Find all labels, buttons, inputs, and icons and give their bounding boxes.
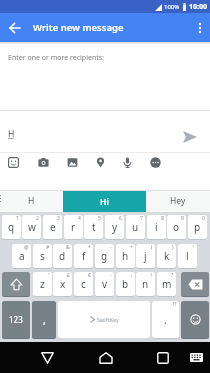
button[interactable] xyxy=(181,301,209,338)
staticText: z xyxy=(40,277,45,291)
staticText: Enter one or more recipients: xyxy=(8,53,104,63)
button[interactable]: x xyxy=(53,272,72,296)
button[interactable]: y xyxy=(105,215,124,239)
button[interactable]: w xyxy=(22,215,41,239)
button[interactable]: b xyxy=(116,272,135,296)
staticText: u xyxy=(132,220,139,234)
staticText: ! xyxy=(151,272,153,279)
staticText: 123 xyxy=(9,314,23,325)
staticText: s xyxy=(40,249,45,263)
button[interactable] xyxy=(149,342,177,373)
button[interactable] xyxy=(186,342,206,373)
staticText: b xyxy=(122,277,129,291)
button[interactable] xyxy=(90,152,110,172)
button[interactable]: q xyxy=(2,215,21,239)
staticText: c xyxy=(81,277,86,291)
button[interactable] xyxy=(33,152,53,172)
staticText: d xyxy=(59,249,66,263)
staticText: r xyxy=(71,220,76,234)
staticText: !? xyxy=(173,301,177,308)
staticText: * xyxy=(88,244,91,251)
button[interactable]: p xyxy=(188,215,207,239)
button[interactable]: h xyxy=(116,244,135,268)
staticText: h xyxy=(122,249,129,263)
staticText: ) xyxy=(172,244,174,251)
staticText: H xyxy=(8,128,15,140)
staticText: Hi xyxy=(100,196,109,208)
button[interactable]: v xyxy=(95,272,114,296)
staticText: 2 xyxy=(36,215,39,222)
staticText: 5 xyxy=(98,215,101,222)
staticText: € xyxy=(88,272,91,279)
button[interactable]: Hi xyxy=(63,191,146,212)
button[interactable]: d xyxy=(53,244,72,268)
staticText: 100% xyxy=(164,3,180,11)
button[interactable] xyxy=(190,13,210,42)
button[interactable]: f xyxy=(74,244,93,268)
button[interactable] xyxy=(2,13,28,42)
staticText: a xyxy=(19,249,25,263)
staticText: p xyxy=(194,220,201,234)
staticText: w xyxy=(28,220,36,234)
button[interactable] xyxy=(3,152,23,172)
staticText: + xyxy=(130,244,133,251)
staticText: v xyxy=(102,277,108,291)
staticText: o xyxy=(173,220,180,234)
staticText: , xyxy=(43,313,46,327)
staticText: Hey xyxy=(170,195,186,207)
staticText: j xyxy=(144,249,147,263)
staticText: 3 xyxy=(57,215,60,222)
button[interactable]: SwiftKey xyxy=(58,301,150,338)
staticText: t xyxy=(92,220,96,234)
staticText: q xyxy=(8,220,15,234)
button[interactable]: , xyxy=(32,301,56,338)
button[interactable]: c xyxy=(74,272,93,296)
button[interactable]: Hey xyxy=(157,190,199,212)
button[interactable]: i xyxy=(147,215,166,239)
staticText: H xyxy=(28,195,35,207)
button[interactable] xyxy=(62,152,82,172)
button[interactable]: 123 xyxy=(2,301,30,338)
staticText: . xyxy=(164,313,167,327)
staticText: £ xyxy=(67,272,70,279)
button[interactable]: r xyxy=(64,215,83,239)
staticText: m xyxy=(162,277,172,291)
button[interactable] xyxy=(2,272,30,296)
staticText: 10:00 xyxy=(189,2,207,12)
button[interactable]: g xyxy=(95,244,114,268)
staticText: · xyxy=(110,272,112,279)
staticText: n xyxy=(142,277,149,291)
button[interactable] xyxy=(117,152,137,172)
button[interactable]: a xyxy=(12,244,31,268)
button[interactable]: l xyxy=(178,244,197,268)
staticText: e xyxy=(50,220,56,234)
staticText: Write new message xyxy=(33,21,124,34)
button[interactable]: o xyxy=(167,215,186,239)
button[interactable] xyxy=(145,152,165,172)
staticText: 0 xyxy=(202,215,205,222)
button[interactable]: H xyxy=(10,190,52,212)
button[interactable]: n xyxy=(136,272,155,296)
button[interactable] xyxy=(178,127,202,147)
button[interactable]: s xyxy=(33,244,52,268)
button[interactable] xyxy=(33,342,61,373)
button[interactable]: j xyxy=(136,244,155,268)
staticText: ; xyxy=(131,272,133,279)
button[interactable]: . xyxy=(152,301,179,338)
button[interactable] xyxy=(181,272,209,296)
staticText: SwiftKey xyxy=(97,316,119,323)
button[interactable] xyxy=(92,342,120,373)
button[interactable]: z xyxy=(33,272,52,296)
button[interactable]: u xyxy=(126,215,145,239)
button[interactable]: k xyxy=(157,244,176,268)
staticText: g xyxy=(101,249,108,263)
staticText: ` xyxy=(48,272,50,279)
button[interactable]: e xyxy=(43,215,62,239)
staticText: x xyxy=(60,277,66,291)
staticText: 9 xyxy=(181,215,184,222)
button[interactable]: t xyxy=(84,215,103,239)
button[interactable]: m xyxy=(157,272,176,296)
staticText: - xyxy=(110,244,112,251)
staticText: # xyxy=(46,244,50,251)
staticText: ( xyxy=(151,244,153,251)
